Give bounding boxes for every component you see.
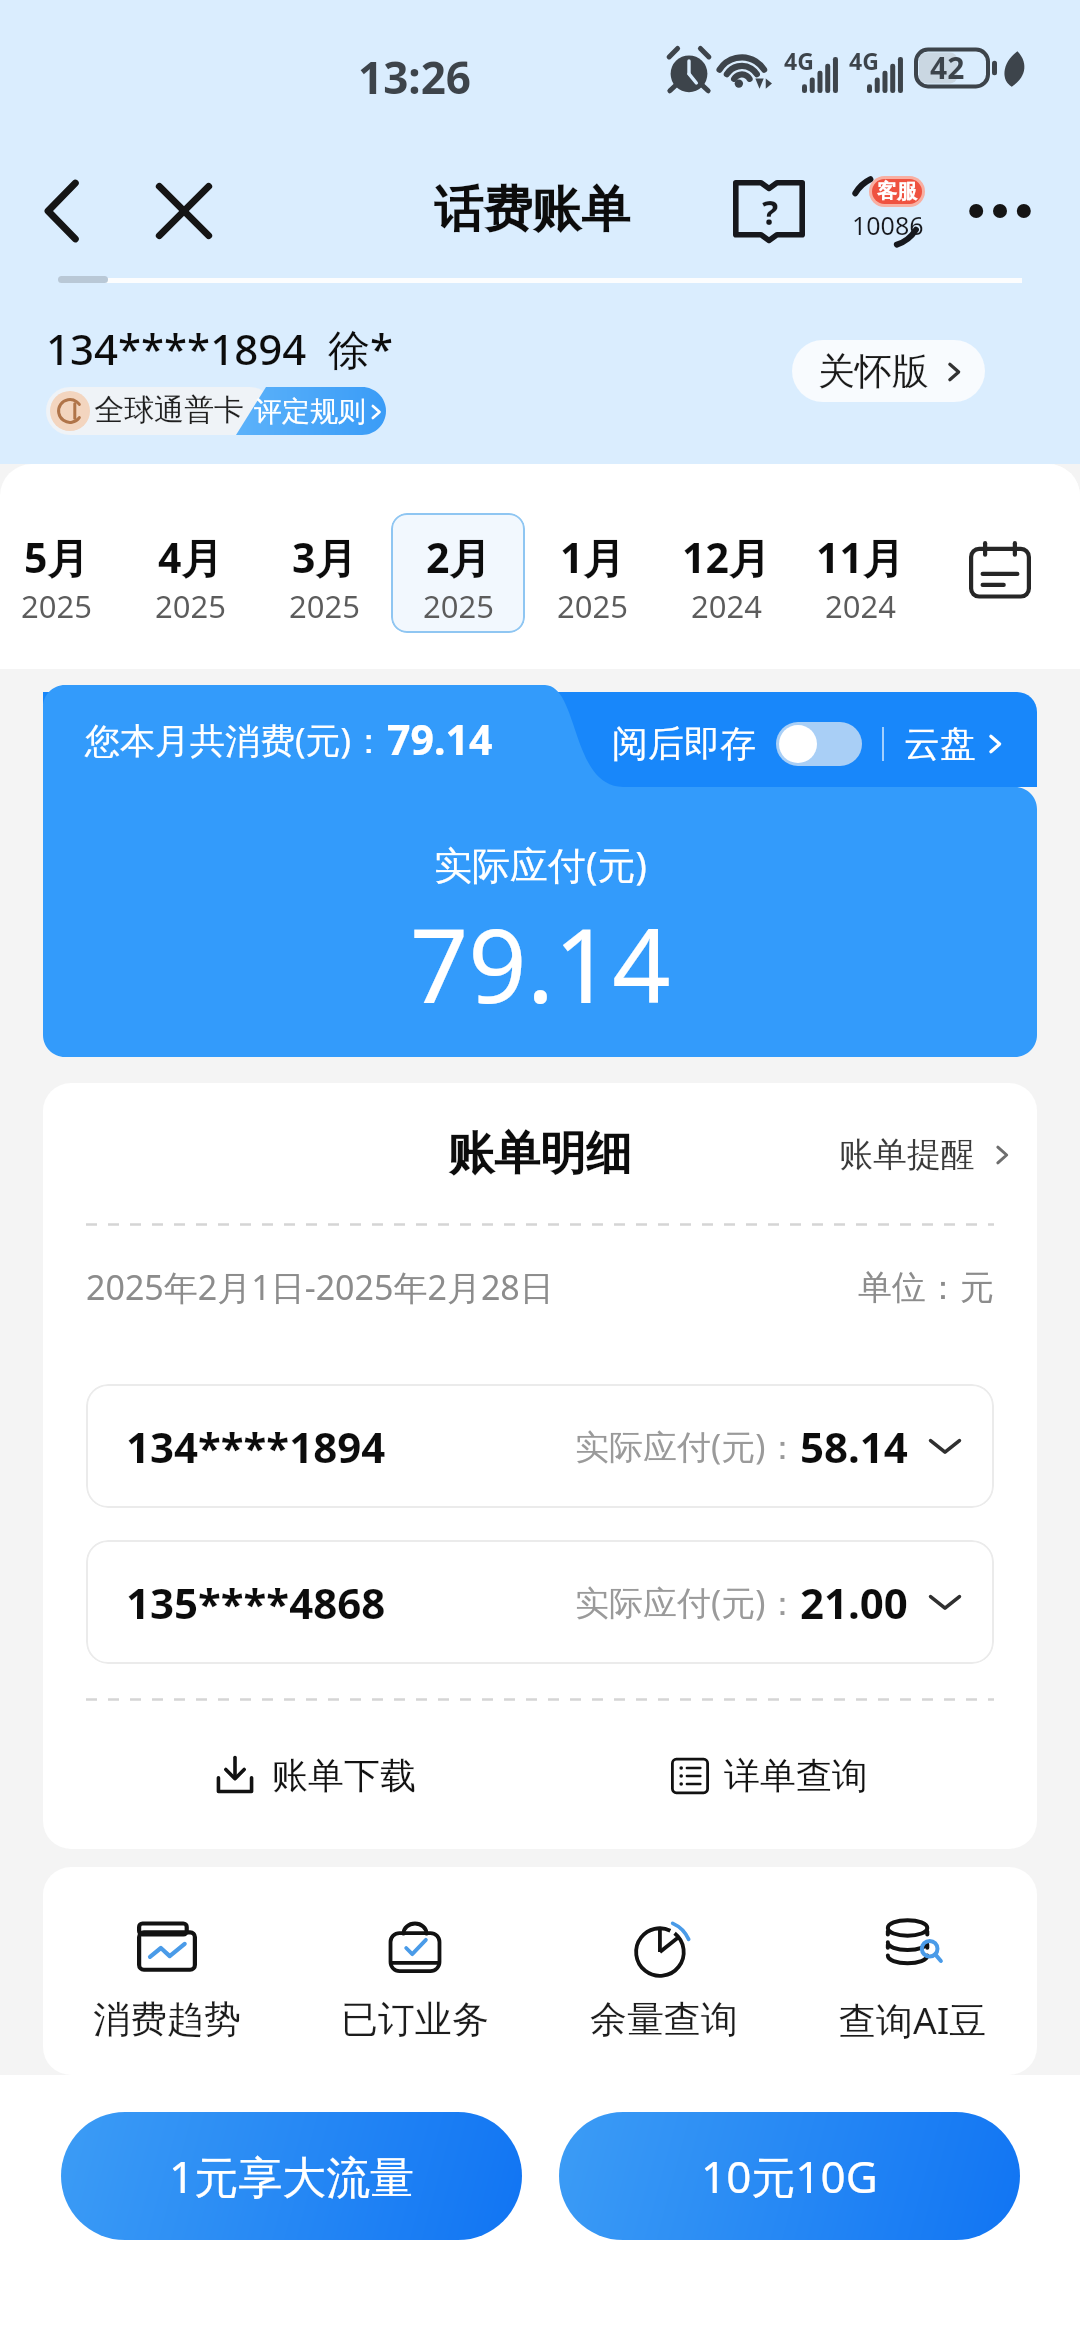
staticText: 账单提醒 xyxy=(839,1133,975,1176)
staticText: 2025年2月1日-2025年2月28日 xyxy=(86,1264,554,1310)
staticText: 实际应付(元) xyxy=(434,838,647,890)
staticText: 21.00 xyxy=(800,1574,908,1631)
staticText: 2025 xyxy=(423,585,494,627)
staticText: 账单下载 xyxy=(272,1753,416,1798)
staticText: 5月 xyxy=(24,529,89,585)
staticText: 您本月共消费(元)： xyxy=(85,716,387,764)
button[interactable]: 消费趋势 xyxy=(43,1867,291,2075)
button[interactable]: 3月 xyxy=(257,513,391,633)
button[interactable]: 账单提醒 xyxy=(839,1133,1015,1176)
button[interactable]: Toggle save after reading xyxy=(776,722,862,766)
staticText: 2024 xyxy=(691,585,762,627)
staticText: 关怀版 xyxy=(818,348,929,395)
staticText: 2025 xyxy=(289,585,360,627)
staticText: 评定规则 xyxy=(254,394,366,429)
staticText: 单位：元 xyxy=(858,1266,994,1309)
button[interactable]: 1元享大流量 xyxy=(61,2112,522,2240)
button[interactable]: 135****4868 xyxy=(86,1540,994,1664)
staticText: 58.14 xyxy=(800,1418,908,1475)
staticText: 2月 xyxy=(426,529,491,585)
button[interactable]: 1月 xyxy=(525,513,659,633)
staticText: 79.14 xyxy=(387,711,493,767)
staticText: 4G xyxy=(849,45,879,76)
button[interactable]: 详单查询 xyxy=(540,1701,1037,1849)
button[interactable]: 134****1894 xyxy=(86,1384,994,1508)
staticText: 2025 xyxy=(557,585,628,627)
button[interactable]: 5月 xyxy=(0,513,123,633)
button[interactable]: 账单下载 xyxy=(43,1701,540,1849)
staticText: 已订业务 xyxy=(341,1996,489,2043)
button[interactable]: More options xyxy=(958,169,1042,253)
staticText: 2025 xyxy=(155,585,226,627)
staticText: ? xyxy=(762,189,779,235)
staticText: 10元10G xyxy=(701,2146,878,2206)
staticText: 账单明细 xyxy=(448,1125,632,1183)
staticText: 实际应付(元)： xyxy=(575,1579,800,1625)
staticText: 42 xyxy=(930,47,965,88)
staticText: 10086 xyxy=(852,208,924,242)
button[interactable]: 关怀版 xyxy=(792,340,985,402)
button[interactable]: 11月 xyxy=(793,513,927,633)
staticText: 13:26 xyxy=(358,47,472,107)
button[interactable]: 4月 xyxy=(123,513,257,633)
button[interactable]: 评定规则 xyxy=(254,394,386,429)
staticText: 135****4868 xyxy=(126,1574,386,1631)
staticText: 4G xyxy=(784,45,814,76)
staticText: 3月 xyxy=(292,529,357,585)
button[interactable]: 2月 xyxy=(391,513,525,633)
button[interactable]: Back xyxy=(22,172,100,250)
staticText: 客服 xyxy=(877,179,917,204)
button[interactable]: 查询AI豆 xyxy=(788,1867,1037,2075)
staticText: 消费趋势 xyxy=(93,1996,241,2043)
staticText: 全球通普卡 xyxy=(94,391,244,429)
staticText: 余量查询 xyxy=(590,1996,738,2043)
staticText: 2025 xyxy=(21,585,92,627)
staticText: 话费账单 xyxy=(434,179,630,241)
staticText: 1月 xyxy=(560,529,625,585)
staticText: 134****1894 xyxy=(126,1418,386,1475)
button[interactable]: Pick month xyxy=(954,525,1046,617)
button[interactable]: 余量查询 xyxy=(539,1867,788,2075)
staticText: 79.14 xyxy=(410,894,671,1033)
button[interactable]: 已订业务 xyxy=(291,1867,539,2075)
button[interactable]: 10元10G xyxy=(559,2112,1020,2240)
staticText: 4月 xyxy=(158,529,223,585)
button[interactable]: Help xyxy=(730,172,808,250)
staticText: 查询AI豆 xyxy=(839,1994,987,2045)
button[interactable]: 云盘 xyxy=(904,721,1008,766)
button[interactable]: Customer service 10086 xyxy=(836,159,940,263)
button[interactable]: Close xyxy=(144,171,224,251)
button[interactable]: 12月 xyxy=(659,513,793,633)
staticText: 2024 xyxy=(825,585,896,627)
staticText: 12月 xyxy=(682,529,770,585)
staticText: 详单查询 xyxy=(724,1753,868,1798)
staticText: 11月 xyxy=(816,529,904,585)
staticText: 阅后即存 xyxy=(612,721,756,766)
staticText: 1元享大流量 xyxy=(169,2146,415,2206)
staticText: 134****1894 徐* xyxy=(46,320,394,377)
staticText: 实际应付(元)： xyxy=(575,1423,800,1469)
staticText: 云盘 xyxy=(904,721,976,766)
